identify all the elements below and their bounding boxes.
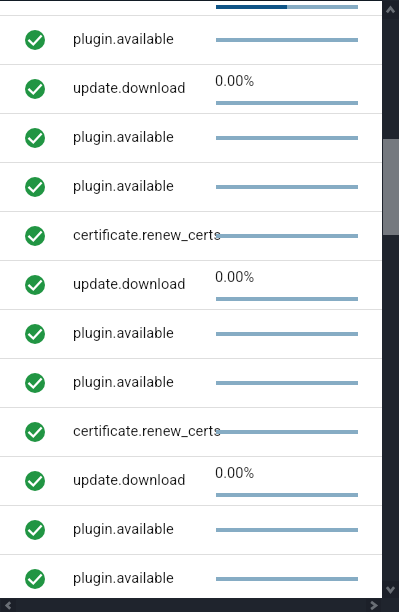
staticText: plugin.available: [73, 373, 174, 390]
staticText: certificate.renew_certs: [73, 226, 221, 243]
staticText: 0.00%: [215, 72, 255, 89]
button[interactable]: plugin.available: [0, 359, 399, 408]
staticText: plugin.available: [73, 177, 174, 194]
button[interactable]: update.download: [0, 65, 399, 114]
staticText: 0.00%: [215, 268, 255, 285]
button[interactable]: plugin.available: [0, 114, 399, 163]
button[interactable]: update.download: [0, 261, 399, 310]
staticText: update.download: [73, 79, 186, 96]
staticText: update.download: [73, 275, 186, 292]
staticText: update.download: [73, 471, 186, 488]
button[interactable]: certificate.renew_certs: [0, 408, 399, 457]
button[interactable]: Scroll left: [1, 599, 16, 612]
button[interactable]: plugin.available: [0, 16, 399, 65]
staticText: plugin.available: [73, 569, 174, 586]
button[interactable]: plugin.available: [0, 506, 399, 555]
button[interactable]: Scroll right: [366, 599, 381, 612]
staticText: certificate.renew_certs: [73, 422, 221, 439]
button[interactable]: certificate.renew_certs: [0, 212, 399, 261]
button[interactable]: plugin.available: [0, 163, 399, 212]
staticText: 0.00%: [215, 464, 255, 481]
button[interactable]: Scroll down: [382, 581, 399, 598]
button[interactable]: plugin.available: [0, 310, 399, 359]
staticText: plugin.available: [73, 520, 174, 537]
staticText: plugin.available: [73, 324, 174, 341]
staticText: plugin.available: [73, 30, 174, 47]
button[interactable]: update.download: [0, 457, 399, 506]
button[interactable]: Scroll up: [382, 1, 399, 19]
button[interactable]: plugin.available: [0, 555, 399, 604]
staticText: plugin.available: [73, 128, 174, 145]
